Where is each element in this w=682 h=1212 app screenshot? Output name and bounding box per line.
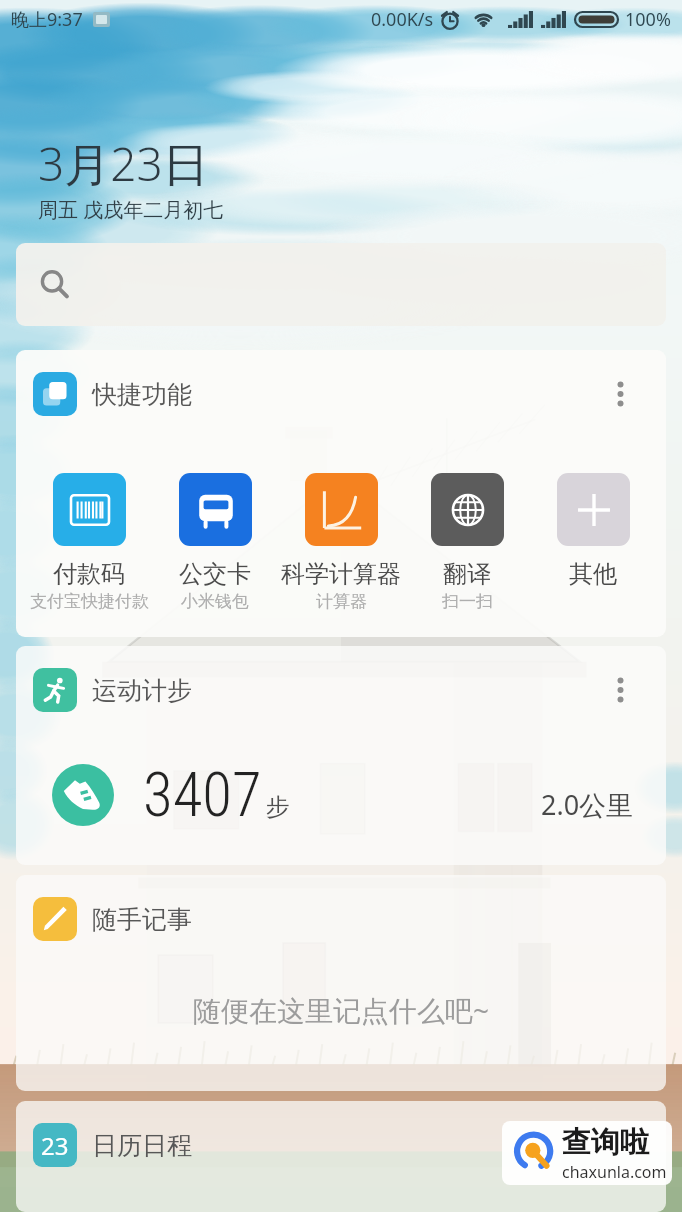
button[interactable]: 付款码 xyxy=(26,473,152,612)
staticText: 随手记事 xyxy=(92,904,192,935)
staticText: 晚上9:37 xyxy=(11,7,83,32)
button[interactable]: 其他 xyxy=(530,473,656,589)
staticText: 计算器 xyxy=(316,591,367,612)
staticText: 随便在这里记点什么吧~ xyxy=(193,991,490,1029)
staticText: 付款码 xyxy=(53,559,125,589)
staticText: 公交卡 xyxy=(179,559,251,589)
staticText: chaxunla.com xyxy=(562,1161,667,1183)
staticText: 3407 xyxy=(143,759,262,830)
staticText: 其他 xyxy=(569,559,617,589)
button[interactable]: 翻译 xyxy=(404,473,530,612)
staticText: 0.00K/s xyxy=(371,7,434,32)
staticText: 支付宝快捷付款 xyxy=(30,591,149,612)
staticText: 科学计算器 xyxy=(281,559,401,589)
staticText: 23 xyxy=(41,1129,69,1162)
staticText: 运动计步 xyxy=(92,675,192,706)
staticText: 3月23日 xyxy=(38,132,209,195)
button[interactable]: 公交卡 xyxy=(152,473,278,612)
staticText: 日历日程 xyxy=(92,1130,192,1161)
staticText: 100% xyxy=(625,7,671,32)
button[interactable]: 科学计算器 xyxy=(278,473,404,612)
staticText: 周五 戊戌年二月初七 xyxy=(38,196,224,223)
button[interactable]: More options xyxy=(600,670,640,710)
staticText: 2.0公里 xyxy=(541,786,634,823)
button[interactable]: Search xyxy=(16,243,666,326)
staticText: 扫一扫 xyxy=(442,591,493,612)
staticText: 小米钱包 xyxy=(181,591,249,612)
staticText: 查询啦 xyxy=(562,1124,649,1161)
staticText: 步 xyxy=(266,792,290,822)
other: Search xyxy=(39,269,70,300)
staticText: 快捷功能 xyxy=(92,379,192,410)
button[interactable]: More options xyxy=(600,374,640,414)
staticText: 翻译 xyxy=(443,559,491,589)
